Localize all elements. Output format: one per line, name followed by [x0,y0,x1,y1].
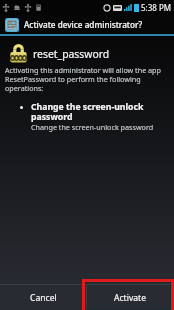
staticText: Change the screen-unlock password [31,122,154,132]
staticText: Activate device administrator? [24,19,143,30]
button[interactable]: Activate [87,285,174,310]
staticText: 5:38 PM [141,2,172,13]
staticText: Activate [114,292,147,304]
button[interactable]: Cancel [0,285,86,310]
staticText: Cancel [30,292,57,304]
staticText: Activating this administrator will allow… [5,65,161,93]
staticText: reset_password [33,47,110,61]
staticText: Change the screen-unlock password [31,101,144,122]
